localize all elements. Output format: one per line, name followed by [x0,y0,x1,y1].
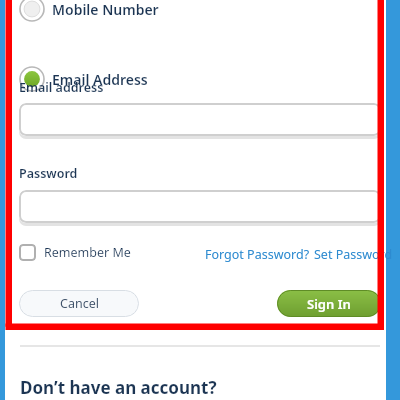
staticText: Remember Me [44,244,131,261]
button[interactable]: Set Password [314,246,393,263]
staticText: Cancel [60,295,99,312]
staticText: Email address [19,79,104,96]
staticText: Sign In [307,295,351,313]
staticText: Set Password [314,246,393,263]
staticText: Don’t have an account? [20,376,217,399]
staticText: Email Address [52,70,148,89]
button[interactable]: Email Address [19,66,148,92]
button[interactable]: Remember Me [19,244,131,261]
button[interactable]: Email address input [19,103,381,136]
button[interactable]: Cancel [19,290,139,317]
button[interactable]: Password input [19,190,381,223]
button[interactable]: Forgot Password? [205,246,310,263]
staticText: Mobile Number [52,0,159,19]
button[interactable]: Mobile Number [19,0,159,22]
staticText: Password [19,165,78,182]
button[interactable]: Sign In [277,290,381,317]
staticText: Forgot Password? [205,246,310,263]
